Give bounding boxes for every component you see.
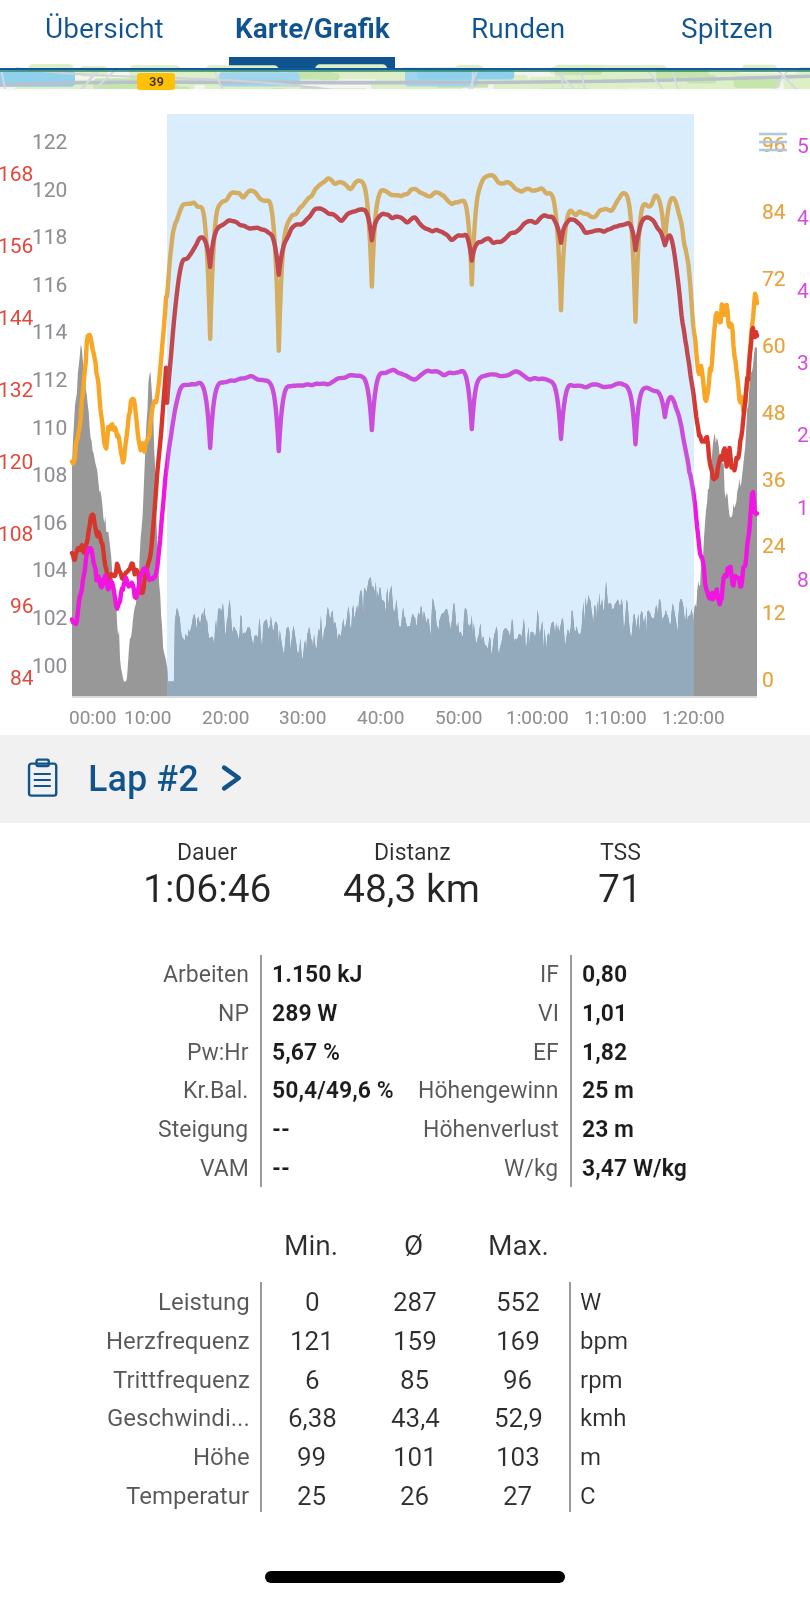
staticText: 72 [762,267,786,292]
button[interactable]: Karte/Grafik [217,0,407,68]
button[interactable]: Übersicht [29,0,179,68]
staticText: 50,4/49,6 % [272,1077,394,1104]
staticText: 99 [297,1442,327,1472]
staticText: 39 [149,74,164,89]
staticText: 1:00:00 [506,706,569,728]
staticText: 48 [797,206,810,231]
staticText: 169 [496,1326,540,1356]
staticText: 16 [797,496,810,521]
staticText: C [580,1482,596,1510]
staticText: Kr.Bal. [183,1077,249,1104]
staticText: 96 [10,594,34,619]
staticText: m [580,1443,602,1471]
staticText: Lap #2 [88,758,199,800]
staticText: 48 [762,401,786,426]
staticText: Arbeiten [163,961,249,988]
staticText: Spitzen [681,12,774,45]
staticText: 100 [32,654,68,679]
staticText: 116 [32,273,68,298]
staticText: 110 [32,416,68,441]
staticText: 24 [762,534,786,559]
staticText: 120 [32,178,68,203]
staticText: IF [540,961,559,988]
staticText: 120 [0,450,34,475]
staticText: Höhengewinn [418,1077,559,1104]
staticText: 108 [0,522,34,547]
staticText: 26 [400,1481,430,1511]
staticText: 48,3 km [343,866,481,912]
button[interactable]: Spitzen [657,0,797,68]
staticText: 96 [503,1365,533,1395]
staticText: rpm [580,1366,623,1394]
staticText: Geschwindi... [107,1404,250,1432]
staticText: 287 [393,1287,437,1317]
staticText: 32 [797,351,810,376]
staticText: 0 [305,1287,320,1317]
staticText: Max. [488,1229,549,1262]
staticText: Dauer [177,839,238,866]
staticText: 122 [32,130,68,155]
staticText: 00:00 [69,706,117,728]
staticText: 56 [797,134,810,159]
staticText: 552 [496,1287,540,1317]
staticText: 30:00 [279,706,327,728]
staticText: 114 [32,320,68,345]
staticText: 50:00 [435,706,483,728]
staticText: 40 [797,279,810,304]
staticText: 84 [762,200,786,225]
staticText: 1:20:00 [662,706,725,728]
staticText: 25 [297,1481,327,1511]
staticText: Temperatur [126,1482,250,1510]
staticText: 103 [496,1442,540,1472]
staticText: Höhe [193,1443,250,1471]
staticText: 104 [32,558,68,583]
staticText: 40:00 [357,706,405,728]
staticText: 25 m [582,1077,635,1104]
staticText: 43,4 [391,1403,440,1433]
staticText: 71 [598,866,642,912]
staticText: Übersicht [45,12,164,45]
staticText: 108 [32,463,68,488]
staticText: Karte/Grafik [235,12,390,45]
staticText: Trittfrequenz [113,1366,250,1394]
staticText: TSS [600,839,641,866]
staticText: 144 [0,306,34,331]
staticText: Leistung [158,1288,250,1316]
staticText: 3,47 W/kg [582,1155,687,1182]
staticText: 12 [762,601,786,626]
button[interactable]: Runden [448,0,588,68]
staticText: 10:00 [124,706,172,728]
staticText: -- [272,1155,290,1182]
staticText: 85 [400,1365,430,1395]
staticText: 1,82 [582,1039,628,1066]
staticText: 20:00 [202,706,250,728]
button[interactable]: Lap #2 [0,735,810,823]
staticText: VAM [200,1155,249,1182]
staticText: 6,38 [288,1403,337,1433]
staticText: 106 [32,511,68,536]
staticText: W/kg [504,1155,559,1182]
staticText: 101 [393,1442,437,1472]
staticText: NP [218,1000,249,1027]
staticText: Runden [471,12,566,45]
staticText: VI [538,1000,559,1027]
staticText: Steigung [158,1116,249,1143]
staticText: Herzfrequenz [106,1327,250,1355]
staticText: 60 [762,334,786,359]
staticText: 112 [32,368,68,393]
staticText: 27 [503,1481,533,1511]
staticText: EF [533,1039,559,1066]
staticText: 1:10:00 [584,706,647,728]
staticText: 5,67 % [272,1039,340,1066]
staticText: 52,9 [494,1403,543,1433]
staticText: Pw:Hr [187,1039,249,1066]
staticText: 36 [762,468,786,493]
staticText: 0 [762,668,774,693]
staticText: 132 [0,378,34,403]
staticText: kmh [580,1404,627,1432]
staticText: Min. [284,1229,339,1262]
staticText: 159 [393,1326,437,1356]
staticText: 156 [0,234,34,259]
staticText: bpm [580,1327,628,1355]
staticText: 168 [0,162,34,187]
